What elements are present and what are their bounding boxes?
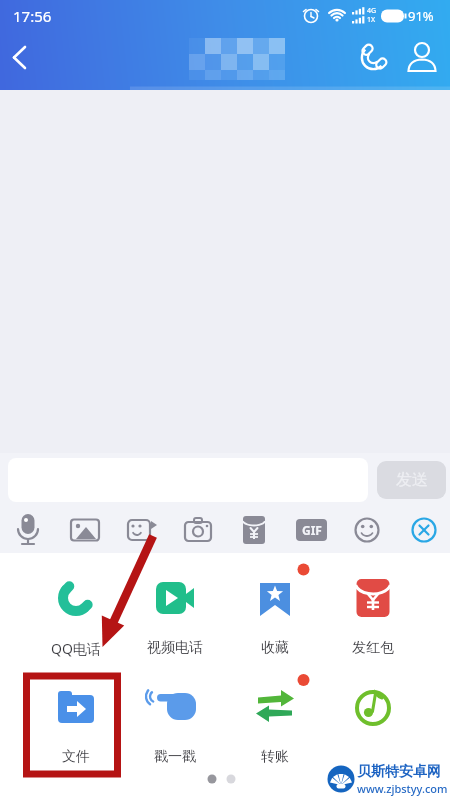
staticText: 91%	[408, 7, 434, 25]
staticText: 收藏	[261, 639, 289, 657]
button[interactable]	[119, 510, 163, 550]
button[interactable]	[6, 510, 50, 550]
button[interactable]: QQ电话	[27, 576, 125, 668]
button[interactable]	[402, 510, 446, 550]
staticText: www.zjbstyy.com	[357, 781, 448, 796]
staticText: QQ电话	[51, 639, 101, 658]
staticText: 贝斯特安卓网	[357, 763, 441, 781]
button[interactable]	[324, 685, 422, 777]
staticText: 17:56	[13, 6, 52, 26]
staticText: 1X	[367, 15, 376, 25]
staticText: 发送	[396, 470, 428, 490]
staticText: GIF	[302, 522, 322, 538]
staticText: 视频电话	[147, 639, 203, 657]
button[interactable]: 戳一戳	[126, 685, 224, 777]
staticText: 戳一戳	[154, 748, 196, 766]
button[interactable]	[63, 510, 107, 550]
button[interactable]	[402, 40, 442, 76]
button[interactable]	[176, 510, 220, 550]
button[interactable]: 发红包	[324, 576, 422, 668]
button[interactable]: 转账	[226, 685, 324, 777]
button[interactable]: 视频电话	[126, 576, 224, 668]
button[interactable]: 收藏	[226, 576, 324, 668]
staticText: 4G	[367, 6, 377, 16]
button[interactable]: 文件	[27, 685, 125, 777]
button[interactable]: 发送	[377, 461, 446, 499]
staticText: 发红包	[352, 639, 394, 657]
button[interactable]: GIF	[289, 510, 333, 550]
button[interactable]	[232, 510, 276, 550]
button[interactable]	[345, 510, 389, 550]
staticText: 文件	[62, 748, 90, 766]
button[interactable]	[352, 40, 394, 76]
button[interactable]	[0, 38, 44, 78]
staticText: 转账	[261, 748, 289, 766]
